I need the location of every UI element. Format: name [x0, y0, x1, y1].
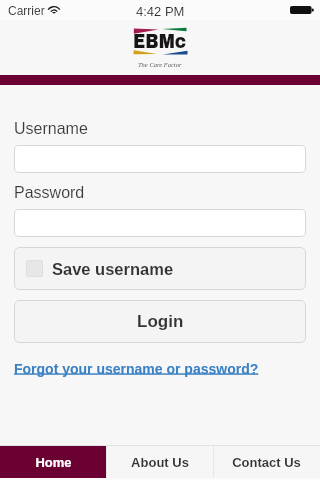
staticText: Username [14, 120, 88, 138]
button[interactable]: Save username [14, 247, 306, 290]
staticText: Contact Us [232, 455, 301, 470]
button[interactable]: About Us [106, 446, 213, 478]
button[interactable]: Home [0, 446, 106, 478]
staticText: EBMc [133, 31, 187, 52]
button[interactable]: Login [14, 300, 306, 343]
button[interactable]: Contact Us [213, 446, 320, 478]
staticText: The Care Factor [138, 61, 182, 68]
button[interactable]: Text field [14, 145, 306, 173]
staticText: Login [137, 312, 184, 331]
staticText: Save username [52, 260, 174, 278]
staticText: 4:42 PM [136, 4, 185, 19]
staticText: Home [35, 455, 72, 470]
other: Battery [290, 6, 314, 14]
button[interactable]: Forgot your username or password? [14, 361, 259, 377]
button[interactable]: Text field [14, 209, 306, 237]
staticText: Carrier [8, 4, 45, 17]
staticText: Password [14, 184, 85, 202]
staticText: About Us [131, 455, 189, 470]
